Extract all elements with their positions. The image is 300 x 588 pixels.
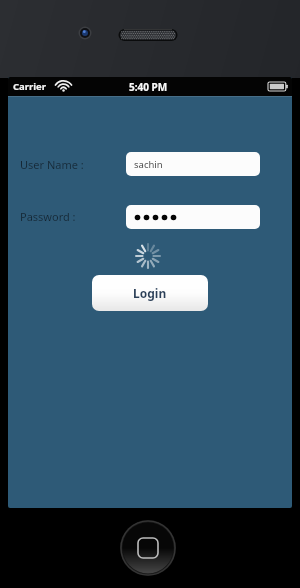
button[interactable]: Login [92, 275, 208, 311]
staticText: Login [133, 285, 167, 301]
staticText: 5:40 PM [129, 80, 168, 94]
staticText: Password : [20, 209, 76, 224]
staticText: sachin [134, 158, 163, 171]
staticText: User Name : [20, 157, 84, 172]
button[interactable]: Password field [126, 205, 260, 229]
staticText: Carrier [13, 80, 47, 93]
button[interactable]: User Name field [126, 152, 260, 176]
